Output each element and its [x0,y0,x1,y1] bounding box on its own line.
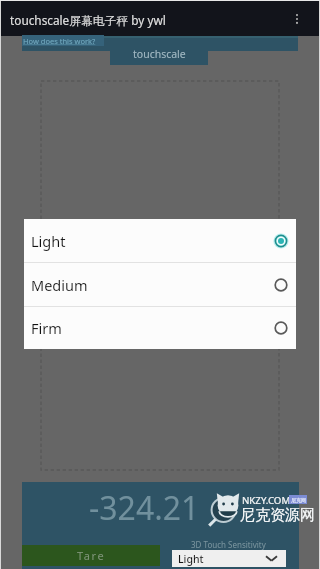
staticText: Firm [31,318,273,338]
staticText: Light [178,552,204,566]
staticText: NKZY.COM [242,494,291,507]
staticText: -324.21 [89,486,200,530]
staticText: 3D Touch Sensitivity [191,539,266,550]
button[interactable]: Light [24,219,296,262]
staticText: Medium [31,275,273,295]
button[interactable]: touchscale [110,38,208,65]
staticText: touchscale屏幕电子秤 by ywl [10,12,166,28]
staticText: Light [31,231,273,251]
button[interactable]: Firm [24,307,296,349]
staticText: 尼克网 [291,497,306,503]
staticText: 尼克资源网 [240,506,315,525]
button[interactable]: Medium [24,263,296,306]
staticText: How does this work? [23,36,96,46]
button[interactable]: Tare [22,545,160,566]
button[interactable]: Light [172,550,286,567]
button[interactable]: How does this work? [22,35,104,46]
button[interactable]: More options [282,0,320,36]
staticText: Tare [77,548,106,563]
staticText: touchscale [133,47,186,61]
